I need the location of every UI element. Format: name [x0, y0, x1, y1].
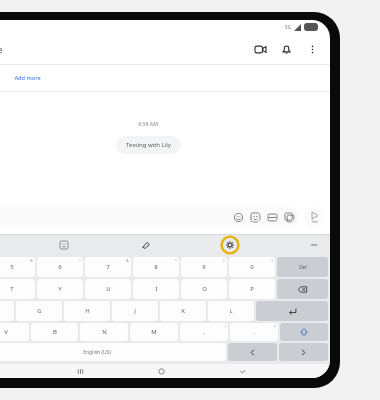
staticText: ) — [271, 258, 273, 263]
staticText: T — [10, 285, 14, 293]
staticText: M — [151, 328, 157, 336]
staticText: 6 — [58, 263, 62, 271]
staticText: & — [126, 258, 129, 263]
button[interactable]: K — [160, 301, 206, 321]
staticText: Add more — [14, 74, 41, 82]
button[interactable]: Collapse — [306, 237, 322, 253]
button[interactable]: I — [133, 279, 179, 299]
button[interactable]: . — [230, 323, 278, 341]
button[interactable]: Video call — [250, 39, 270, 59]
staticText: 0 — [250, 263, 254, 271]
staticText: , — [203, 328, 205, 336]
staticText: Y — [58, 285, 62, 293]
button[interactable]: Sticker — [249, 211, 261, 223]
button[interactable]: Keyboard settings — [220, 235, 240, 255]
button[interactable] — [280, 323, 328, 341]
button[interactable]: 7 — [85, 257, 131, 277]
staticText: I — [155, 285, 158, 293]
button[interactable]: N — [80, 323, 128, 341]
button[interactable]: More options — [302, 39, 322, 59]
button[interactable]: Gallery — [266, 211, 278, 223]
button[interactable] — [228, 343, 277, 361]
button[interactable]: J — [112, 301, 158, 321]
button[interactable]: Handwriting — [138, 237, 154, 253]
staticText: G — [37, 307, 42, 315]
button[interactable] — [279, 343, 328, 361]
button[interactable]: H — [64, 301, 110, 321]
button[interactable]: B — [31, 323, 78, 341]
staticText: % — [30, 258, 33, 263]
staticText: B — [53, 328, 57, 336]
button[interactable]: O — [181, 279, 227, 299]
button[interactable]: G — [16, 301, 62, 321]
staticText: Example — [0, 44, 3, 55]
button[interactable]: Recents — [73, 364, 87, 378]
staticText: O — [202, 285, 207, 293]
button[interactable]: ssage — [0, 207, 299, 227]
staticText: K — [181, 307, 185, 315]
staticText: . — [253, 328, 255, 336]
button[interactable]: L — [208, 301, 254, 321]
button[interactable]: Del — [277, 257, 328, 277]
button[interactable]: Notifications — [276, 39, 296, 59]
button[interactable]: , — [180, 323, 228, 341]
staticText: * — [175, 258, 177, 263]
button[interactable]: P — [229, 279, 275, 299]
button[interactable]: Emoji — [232, 211, 244, 223]
staticText: English (US) — [83, 349, 111, 356]
button[interactable]: Home — [154, 364, 168, 378]
button[interactable]: V — [0, 323, 29, 341]
staticText: Testing with Lily — [126, 141, 171, 149]
staticText: 5G — [285, 24, 291, 30]
staticText: 7 — [106, 263, 110, 271]
button[interactable]: Back — [235, 364, 249, 378]
staticText: 6:59 AM — [138, 120, 158, 127]
staticText: ! — [225, 324, 226, 329]
button[interactable]: 9 — [181, 257, 227, 277]
button[interactable] — [277, 279, 328, 299]
staticText: P — [250, 285, 254, 293]
button[interactable]: Attach — [283, 211, 295, 223]
staticText: ^ — [79, 258, 81, 263]
button[interactable]: 8 — [133, 257, 179, 277]
button[interactable]: 0 — [229, 257, 275, 277]
button[interactable]: Y — [37, 279, 83, 299]
button[interactable]: 6 — [37, 257, 83, 277]
staticText: 9 — [202, 263, 206, 271]
staticText: J — [134, 307, 136, 315]
button[interactable]: M — [130, 323, 178, 341]
staticText: Del — [299, 264, 307, 271]
button[interactable]: 5 — [0, 257, 35, 277]
button[interactable]: English (US) — [0, 343, 226, 361]
staticText: V — [4, 328, 8, 336]
button[interactable] — [256, 301, 328, 321]
button[interactable]: Sticker pack — [56, 237, 72, 253]
button[interactable]: T — [0, 279, 35, 299]
staticText: 8 — [154, 263, 158, 271]
staticText: U — [106, 285, 111, 293]
staticText: N — [102, 328, 107, 336]
staticText: ? — [274, 324, 276, 329]
staticText: 5 — [10, 263, 14, 271]
staticText: L — [229, 307, 233, 315]
button[interactable]: U — [85, 279, 131, 299]
button[interactable]: Testing with Lily — [116, 136, 181, 154]
staticText: ( — [223, 258, 225, 263]
staticText: Text — [311, 219, 318, 223]
button[interactable]: Add more — [12, 72, 43, 84]
staticText: H — [85, 307, 90, 315]
button[interactable]: Send — [304, 207, 324, 227]
